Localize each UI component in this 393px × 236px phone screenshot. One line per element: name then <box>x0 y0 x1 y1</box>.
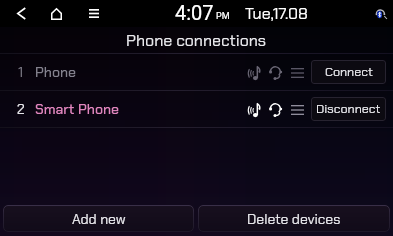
other: Bluetooth headset connected <box>370 4 390 24</box>
staticText: Connect <box>325 64 373 80</box>
button[interactable]: Media audio <box>243 62 264 83</box>
staticText: Phone connections <box>126 30 267 51</box>
button[interactable]: Back <box>10 0 33 27</box>
staticText: Add new <box>72 210 126 228</box>
staticText: Disconnect <box>316 101 381 117</box>
button[interactable]: More options <box>287 99 308 120</box>
staticText: 1 <box>18 63 24 81</box>
staticText: Phone <box>35 63 77 81</box>
button[interactable]: Delete devices <box>198 205 390 232</box>
button[interactable]: Media audio <box>243 99 264 120</box>
staticText: Tue,17.08 <box>245 3 308 24</box>
button[interactable]: Phone audio <box>265 62 286 83</box>
staticText: 4:07 <box>175 1 214 24</box>
button[interactable]: 1 <box>0 54 393 90</box>
button[interactable]: Home <box>45 0 68 27</box>
button[interactable]: 2 <box>0 91 393 127</box>
button[interactable]: Phone audio <box>265 99 286 120</box>
staticText: PM <box>216 11 230 22</box>
staticText: Smart Phone <box>35 100 119 118</box>
staticText: Delete devices <box>247 210 341 228</box>
staticText: 2 <box>17 100 25 118</box>
button[interactable]: Add new <box>3 205 194 232</box>
button[interactable]: Connect <box>311 60 386 84</box>
button[interactable]: Disconnect <box>311 97 386 121</box>
button[interactable]: More options <box>287 62 308 83</box>
button[interactable]: Menu <box>82 0 105 27</box>
